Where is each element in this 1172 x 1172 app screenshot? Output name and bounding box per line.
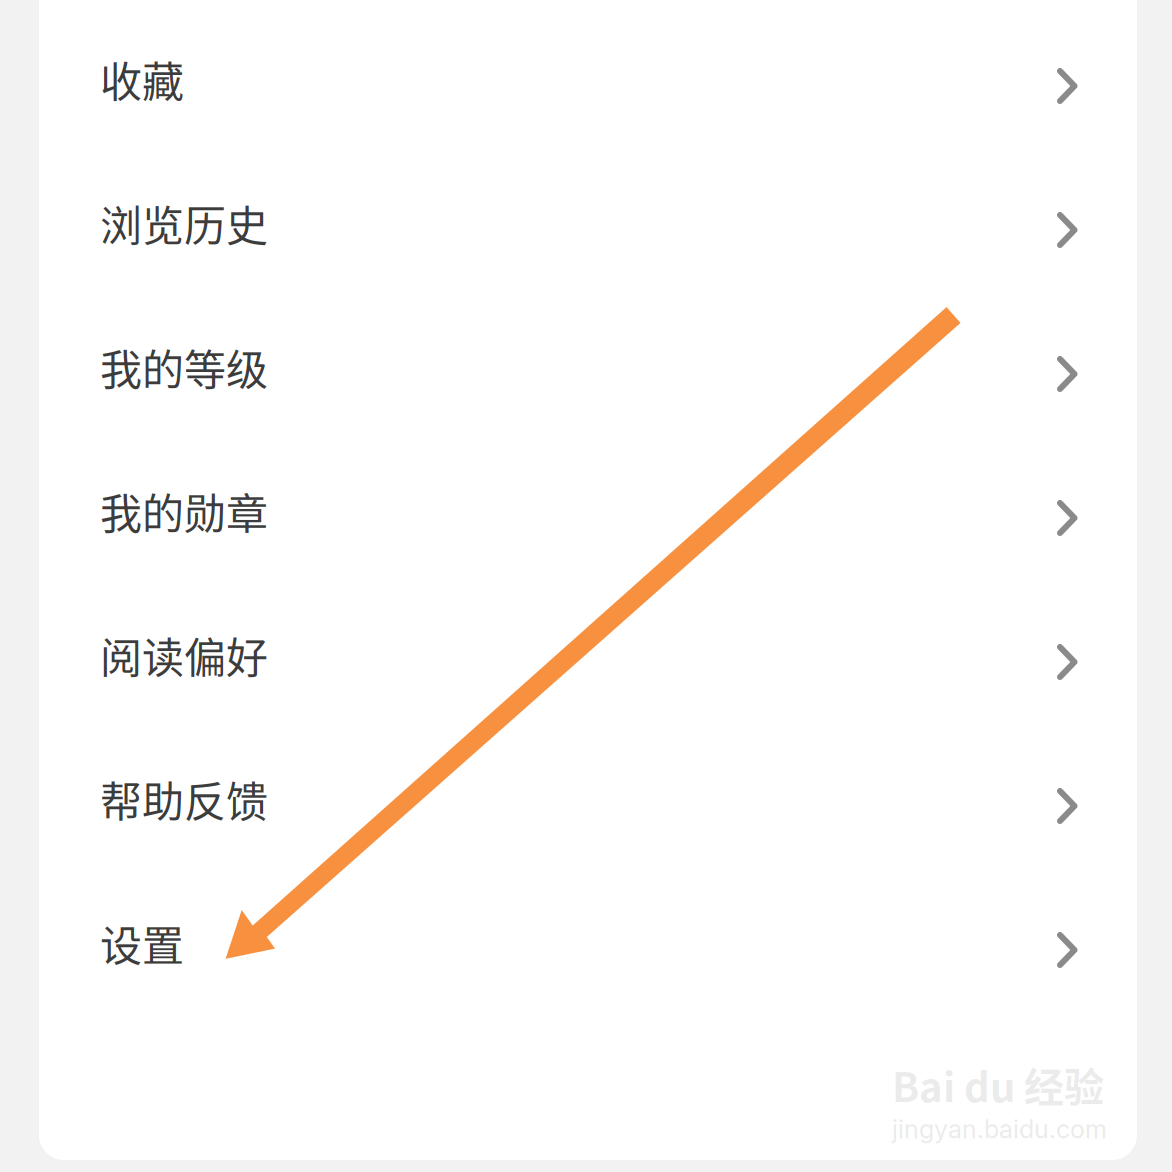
staticText: 阅读偏好 [100, 625, 268, 685]
staticText: jingyan.baidu.com [892, 1114, 1107, 1144]
staticText: 帮助反馈 [100, 769, 268, 829]
button[interactable]: 我的勋章 [39, 432, 1137, 576]
button[interactable]: 阅读偏好 [39, 576, 1137, 720]
button[interactable]: 浏览历史 [39, 144, 1137, 288]
staticText: 我的等级 [100, 337, 268, 397]
button[interactable]: 收藏 [39, 0, 1137, 144]
staticText: Bai du 经验 [892, 1056, 1104, 1114]
staticText: 我的勋章 [100, 481, 268, 541]
staticText: 设置 [100, 913, 184, 973]
button[interactable]: 帮助反馈 [39, 720, 1137, 864]
staticText: 收藏 [100, 49, 184, 109]
staticText: 浏览历史 [100, 193, 268, 253]
button[interactable]: 我的等级 [39, 288, 1137, 432]
button[interactable]: 设置 [39, 864, 1137, 1008]
